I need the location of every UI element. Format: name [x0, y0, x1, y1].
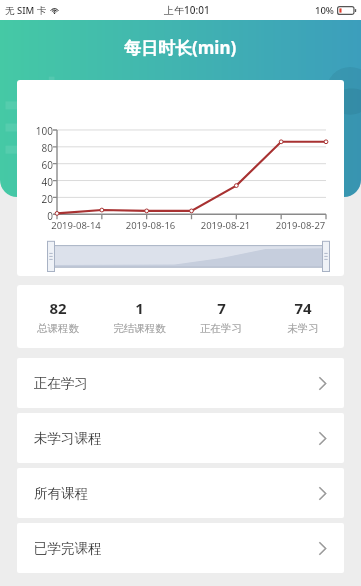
button[interactable]: 未学习课程 [17, 413, 344, 463]
staticText: 10% [315, 4, 334, 17]
staticText: 总课程数 [37, 322, 79, 335]
button[interactable]: 所有课程 [17, 468, 344, 518]
staticText: 82 [49, 298, 67, 318]
staticText: 每日时长(min) [124, 36, 237, 59]
other: Open 已学完课程 [318, 541, 327, 556]
staticText: 正在学习 [34, 375, 88, 392]
staticText: 2019-08-14 [39, 219, 113, 232]
staticText: 正在学习 [200, 322, 242, 335]
button[interactable]: 已学完课程 [17, 523, 344, 573]
staticText: 80 [41, 141, 53, 155]
button[interactable]: 82 [17, 285, 98, 348]
staticText: 无 SIM 卡 [5, 4, 47, 17]
other: Open 正在学习 [318, 376, 327, 391]
staticText: 未学习 [287, 322, 319, 335]
button[interactable]: 1 [98, 285, 180, 348]
staticText: 1 [135, 298, 144, 318]
staticText: 60 [41, 158, 53, 172]
staticText: 2019-08-21 [188, 219, 263, 232]
staticText: 完结课程数 [113, 322, 166, 335]
staticText: 所有课程 [34, 485, 88, 502]
button[interactable]: 74 [262, 285, 344, 348]
button[interactable]: 7 [180, 285, 262, 348]
staticText: 2019-08-27 [263, 219, 338, 232]
other: Open 未学习课程 [318, 431, 327, 446]
other: Open 所有课程 [318, 486, 327, 501]
staticText: 20 [41, 192, 53, 206]
staticText: 2019-08-16 [113, 219, 188, 232]
staticText: 100 [35, 124, 53, 138]
staticText: 已学完课程 [34, 540, 102, 557]
staticText: 74 [294, 298, 312, 318]
button[interactable]: 正在学习 [17, 358, 344, 408]
staticText: 7 [217, 298, 226, 318]
staticText: 40 [41, 175, 53, 189]
staticText: 0 [47, 209, 53, 223]
staticText: 未学习课程 [34, 430, 102, 447]
staticText: 上午10:01 [164, 3, 210, 17]
